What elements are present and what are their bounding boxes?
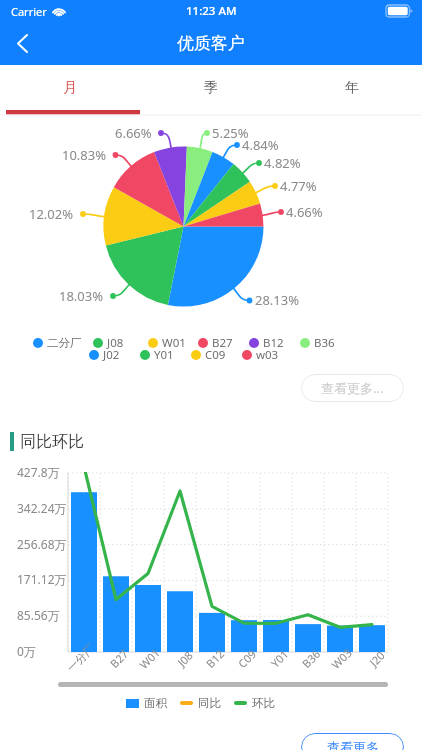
button[interactable]: 查看更多... (301, 374, 404, 402)
staticText: J08 (107, 335, 124, 351)
staticText: W01 (136, 645, 163, 672)
button[interactable]: w03 (242, 347, 279, 363)
staticText: 85.56万 (17, 607, 60, 623)
staticText: 342.24万 (17, 500, 67, 516)
staticText: 11:23 AM (186, 3, 237, 19)
staticText: 同比 (198, 696, 221, 710)
button[interactable]: 月 (0, 65, 140, 111)
staticText: B12 (263, 335, 284, 351)
staticText: J20 (366, 647, 388, 669)
staticText: 171.12万 (17, 571, 67, 587)
staticText: 256.68万 (17, 536, 67, 552)
staticText: 同比环比 (20, 432, 84, 452)
staticText: 10.83% (62, 146, 107, 164)
staticText: 环比 (252, 696, 275, 710)
staticText: 月 (63, 79, 77, 97)
staticText: 4.82% (264, 154, 301, 172)
staticText: J08 (174, 647, 196, 669)
staticText: 4.84% (242, 136, 279, 154)
staticText: W01 (162, 335, 186, 351)
button[interactable]: 查看更多 (301, 733, 404, 750)
button[interactable]: 年 (281, 65, 422, 111)
button[interactable]: W01 (148, 335, 186, 351)
staticText: 季 (204, 79, 218, 97)
button[interactable]: J08 (93, 335, 124, 351)
staticText: C09 (205, 347, 226, 363)
staticText: 优质客户 (177, 33, 245, 54)
button[interactable]: B12 (249, 335, 284, 351)
button[interactable]: C09 (191, 347, 226, 363)
staticText: 0万 (17, 643, 36, 659)
staticText: 面积 (144, 696, 167, 710)
staticText: C09 (235, 646, 259, 671)
staticText: 查看更多... (321, 379, 384, 397)
staticText: B27 (107, 646, 131, 671)
staticText: 6.66% (115, 124, 152, 142)
button[interactable]: Back (0, 22, 44, 65)
staticText: w03 (256, 347, 279, 363)
staticText: 4.66% (286, 203, 323, 221)
button[interactable]: Y01 (140, 347, 174, 363)
staticText: B36 (314, 335, 335, 351)
staticText: B27 (212, 335, 233, 351)
button[interactable]: 二分厂 (33, 335, 82, 351)
staticText: B36 (299, 646, 323, 671)
staticText: 4.77% (280, 177, 317, 195)
staticText: 5.25% (212, 124, 249, 142)
staticText: Y01 (154, 347, 174, 363)
staticText: 二分厂 (47, 336, 82, 350)
staticText: 年 (345, 79, 359, 97)
button[interactable]: B36 (300, 335, 335, 351)
button[interactable]: B27 (198, 335, 233, 351)
staticText: J02 (103, 347, 120, 363)
staticText: B12 (203, 646, 227, 671)
staticText: Carrier (11, 4, 47, 19)
staticText: Y01 (267, 646, 291, 670)
staticText: 12.02% (29, 205, 74, 223)
button[interactable]: J02 (89, 347, 120, 363)
staticText: 28.13% (255, 291, 300, 309)
staticText: W03 (328, 645, 355, 672)
staticText: 18.03% (59, 287, 104, 305)
staticText: 查看更多 (327, 739, 379, 750)
staticText: 一分厂 (64, 641, 97, 675)
staticText: 427.8万 (17, 464, 60, 480)
button[interactable]: 季 (140, 65, 281, 111)
